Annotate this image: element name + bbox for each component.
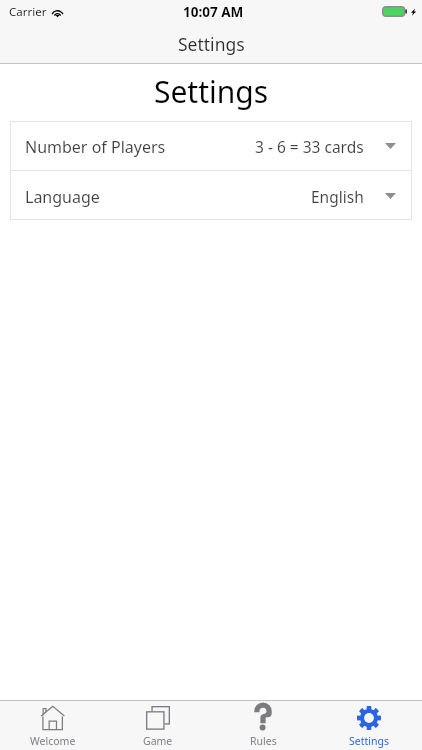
button[interactable]: Welcome	[0, 701, 105, 750]
button[interactable]: Game	[105, 701, 210, 750]
button[interactable]: Rules	[210, 701, 316, 750]
staticText: English	[311, 186, 364, 207]
staticText: Settings	[349, 734, 389, 748]
button[interactable]: Number of Players	[10, 121, 412, 170]
staticText: 10:07 AM	[183, 3, 244, 21]
staticText: Carrier	[9, 4, 47, 20]
button[interactable]: Settings	[316, 701, 422, 750]
other: Welcome	[41, 706, 65, 730]
other: Rules	[251, 706, 275, 730]
staticText: Rules	[250, 734, 277, 748]
staticText: Settings	[178, 32, 245, 56]
staticText: Welcome	[30, 734, 76, 748]
other: Game	[146, 706, 170, 730]
staticText: 3 - 6 = 33 cards	[255, 136, 364, 157]
staticText: Number of Players	[25, 136, 166, 158]
staticText: Language	[25, 186, 100, 208]
other: Settings	[357, 706, 381, 730]
button[interactable]: Language	[10, 171, 412, 220]
staticText: Settings	[0, 71, 422, 112]
staticText: Game	[143, 734, 173, 748]
